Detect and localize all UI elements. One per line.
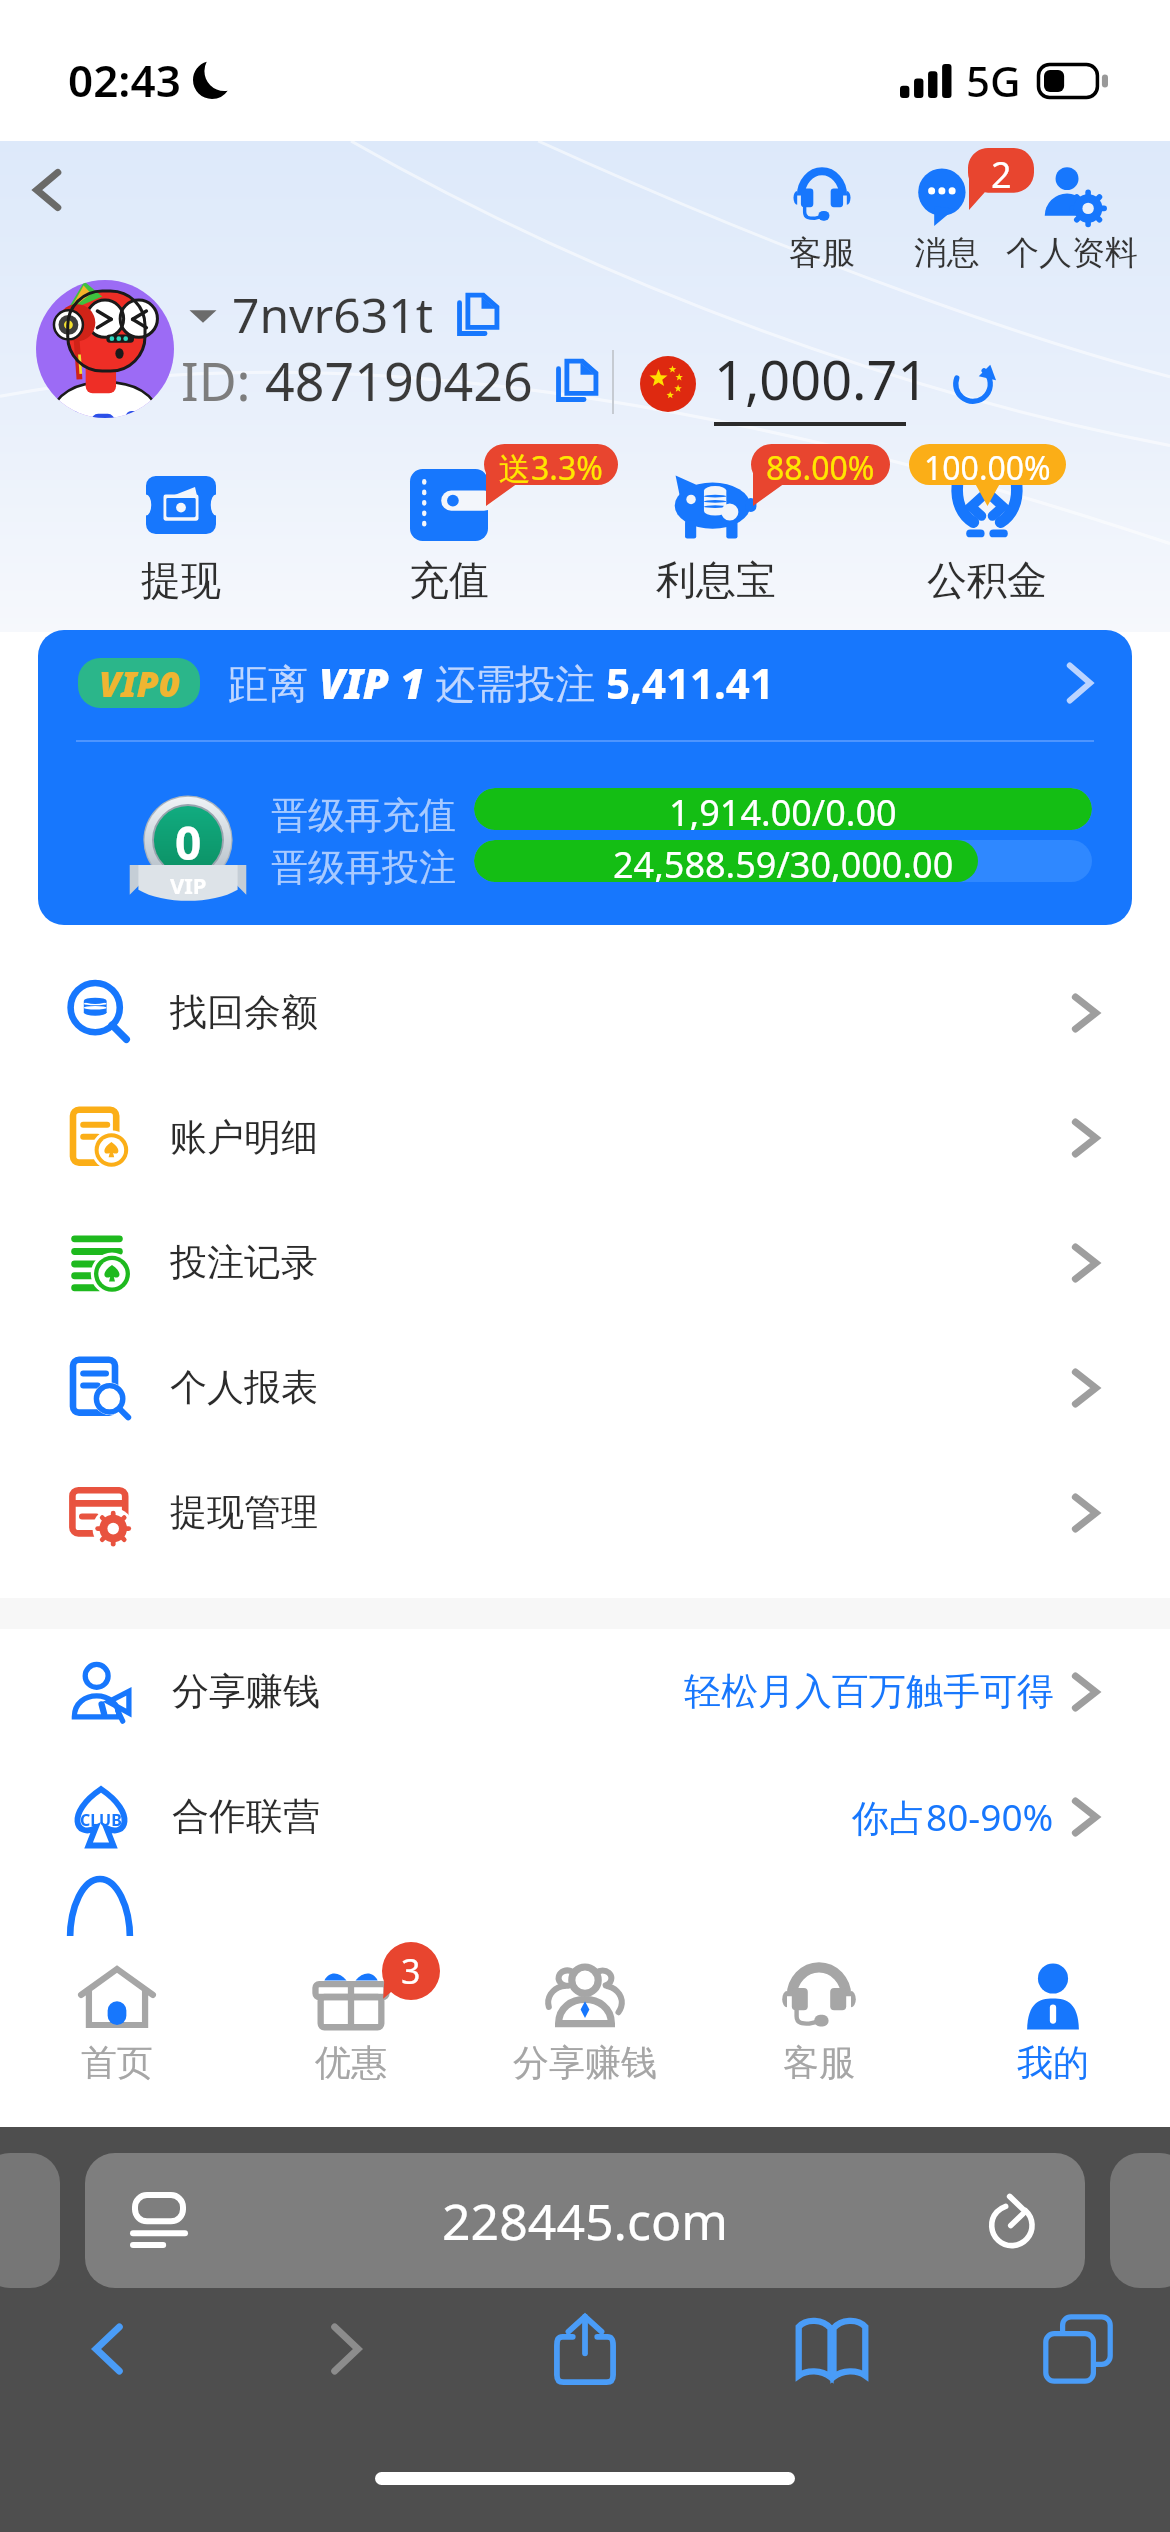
button[interactable]: Tabs: [998, 2279, 1158, 2419]
button[interactable]: 投注记录: [0, 1200, 1170, 1325]
staticText: 我的: [1017, 2040, 1089, 2085]
button[interactable]: 提现管理: [0, 1450, 1170, 1575]
staticText: VIP: [170, 870, 207, 900]
staticText: 距离: [228, 655, 319, 710]
button[interactable]: Avatar: [36, 280, 174, 418]
staticText: 5,411.41: [606, 654, 774, 711]
button[interactable]: CLUB: [0, 1754, 1170, 1879]
button[interactable]: Back: [30, 2279, 190, 2419]
staticText: 还需投注: [425, 655, 606, 710]
staticText: 1,000.71: [714, 342, 929, 416]
staticText: 公积金: [927, 555, 1047, 605]
button[interactable]: Bookmarks: [752, 2279, 912, 2419]
staticText: 3: [401, 1948, 421, 1994]
button[interactable]: Forward: [264, 2279, 424, 2419]
button[interactable]: 利息宝: [576, 455, 856, 605]
staticText: 轻松月入百万触手可得: [684, 1668, 1054, 1715]
staticText: 88.00%: [766, 446, 875, 485]
button[interactable]: 客服: [742, 160, 902, 285]
button[interactable]: Copy username: [452, 289, 504, 341]
button[interactable]: 找回余额: [0, 950, 1170, 1075]
button[interactable]: 客服: [702, 1936, 936, 2127]
button[interactable]: VIP0: [38, 630, 1132, 925]
staticText: 个人报表: [170, 1364, 318, 1411]
staticText: 利息宝: [656, 555, 776, 605]
staticText: 优惠: [315, 2040, 387, 2085]
button[interactable]: 228445.com: [85, 2153, 1085, 2288]
staticText: 02:43: [68, 50, 181, 110]
staticText: 晋级再充值: [271, 792, 456, 839]
button[interactable]: Refresh balance: [945, 356, 1001, 412]
staticText: 487190426: [265, 345, 533, 416]
button[interactable]: 1,000.71: [640, 342, 1001, 426]
staticText: 客服: [783, 2040, 855, 2085]
button[interactable]: 分享赚钱: [468, 1936, 702, 2127]
button[interactable]: 账户明细: [0, 1075, 1170, 1200]
staticText: 1,914.00/0.00: [669, 788, 897, 830]
staticText: 228445.com: [442, 2187, 728, 2255]
button[interactable]: 公积金: [847, 455, 1127, 605]
staticText: 分享赚钱: [172, 1668, 320, 1715]
staticText: 充值: [409, 555, 489, 605]
staticText: 首页: [81, 2040, 153, 2085]
button[interactable]: Back: [4, 150, 90, 230]
staticText: 提现: [141, 555, 221, 605]
staticText: 提现管理: [170, 1489, 318, 1536]
staticText: VIP0: [99, 659, 180, 708]
staticText: 2: [991, 150, 1012, 199]
button[interactable]: Share: [505, 2279, 665, 2419]
staticText: 消息: [914, 232, 980, 274]
button[interactable]: 个人资料: [992, 160, 1152, 285]
staticText: CLUB: [80, 1809, 122, 1831]
staticText: 24,588.59/30,000.00: [613, 840, 954, 882]
staticText: 投注记录: [170, 1239, 318, 1286]
staticText: 分享赚钱: [513, 2040, 657, 2085]
staticText: 7nvr631t: [232, 282, 434, 347]
button[interactable]: 提现: [41, 455, 321, 605]
button[interactable]: 个人报表: [0, 1325, 1170, 1450]
button[interactable]: 消息: [867, 160, 1027, 285]
staticText: 找回余额: [170, 989, 318, 1036]
staticText: ID:: [181, 345, 265, 416]
staticText: 晋级再投注: [271, 844, 456, 891]
staticText: 合作联营: [172, 1793, 320, 1840]
button[interactable]: Copy ID: [551, 355, 603, 407]
staticText: 送3.3%: [499, 446, 603, 485]
staticText: 100.00%: [924, 446, 1051, 485]
button[interactable]: 我的: [936, 1936, 1170, 2127]
staticText: 你占80-90%: [852, 1791, 1054, 1842]
staticText: 个人资料: [1006, 232, 1138, 274]
staticText: VIP 1: [319, 654, 425, 711]
button[interactable]: 优惠: [234, 1936, 468, 2127]
button[interactable]: 充值: [309, 455, 589, 605]
staticText: 0: [175, 811, 202, 874]
staticText: 客服: [789, 232, 855, 274]
button[interactable]: 首页: [0, 1936, 234, 2127]
staticText: 5G: [966, 52, 1021, 109]
button[interactable]: 分享赚钱: [0, 1629, 1170, 1754]
staticText: 账户明细: [170, 1114, 318, 1161]
